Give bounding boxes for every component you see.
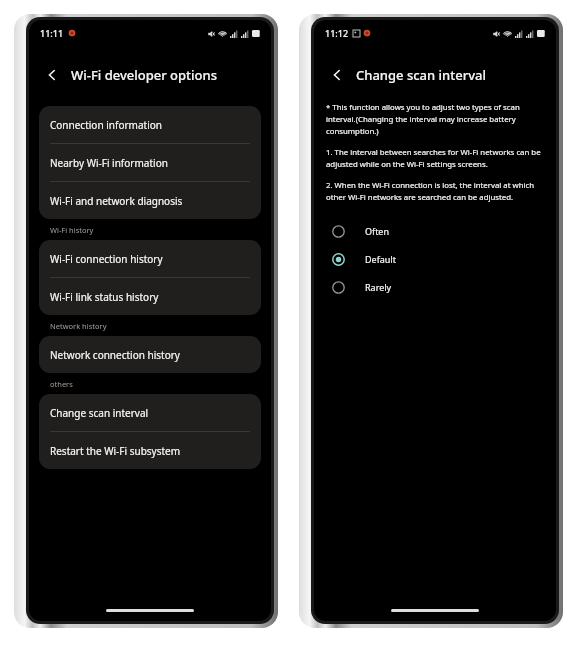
staticText: 11:12 (325, 27, 349, 39)
button[interactable]: Wi-Fi link status history (39, 278, 261, 315)
button[interactable]: Back (326, 64, 348, 86)
button[interactable]: Restart the Wi-Fi subsystem (39, 432, 261, 469)
staticText: Wi-Fi connection history (50, 252, 163, 266)
staticText: Wi-Fi history (50, 225, 94, 235)
button[interactable]: Default (314, 245, 556, 273)
button[interactable]: Often (314, 217, 556, 245)
staticText: Change scan interval (50, 406, 149, 420)
staticText: Often (365, 225, 390, 237)
staticText: 1. The interval between searches for Wi-… (326, 147, 546, 170)
button[interactable]: Back (41, 64, 63, 86)
staticText: others (50, 379, 73, 389)
button[interactable]: Change scan interval (39, 394, 261, 432)
button[interactable]: Wi-Fi and network diagnosis (39, 182, 261, 219)
staticText: 2. When the Wi-Fi connection is lost, th… (326, 180, 546, 203)
button[interactable]: Rarely (314, 273, 556, 301)
button[interactable]: Nearby Wi-Fi information (39, 144, 261, 182)
staticText: Restart the Wi-Fi subsystem (50, 444, 181, 458)
staticText: Wi-Fi developer options (71, 66, 218, 84)
staticText: Wi-Fi and network diagnosis (50, 194, 183, 208)
staticText: Nearby Wi-Fi information (50, 156, 168, 170)
staticText: 11:11 (40, 27, 64, 39)
staticText: Default (365, 253, 396, 265)
staticText: Network history (50, 321, 107, 331)
staticText: Wi-Fi link status history (50, 290, 159, 304)
button[interactable]: Connection information (39, 106, 261, 144)
button[interactable]: Network connection history (39, 336, 261, 373)
staticText: Network connection history (50, 348, 180, 362)
button[interactable]: Wi-Fi connection history (39, 240, 261, 278)
staticText: Rarely (365, 281, 392, 293)
staticText: Change scan interval (356, 66, 486, 84)
staticText: * This function allows you to adjust two… (326, 102, 546, 137)
staticText: Connection information (50, 118, 162, 132)
